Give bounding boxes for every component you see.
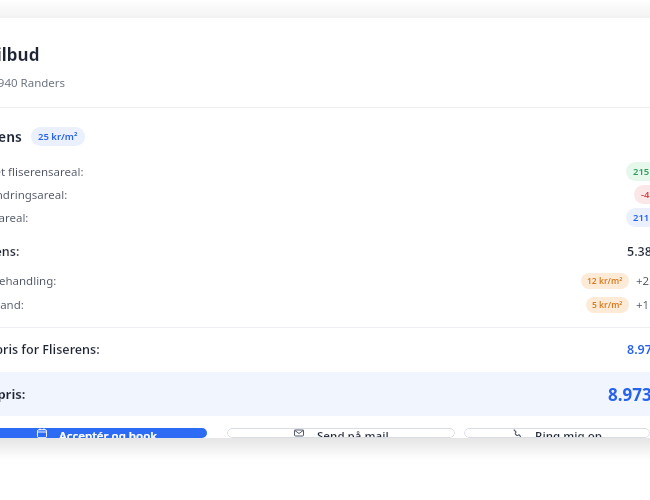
staticText: 12 kr/m² xyxy=(587,275,623,287)
staticText: 8.973 DKK xyxy=(608,383,650,406)
staticText: 5.385 DKK xyxy=(627,243,650,260)
staticText: Fliserens xyxy=(0,128,22,146)
other: Calendar xyxy=(37,428,50,438)
other: Phone xyxy=(512,428,525,438)
staticText: Acceptér og book xyxy=(59,428,158,438)
staticText: Total pris: xyxy=(0,385,26,403)
button[interactable]: Calendar xyxy=(0,428,207,438)
staticText: Total pris for Fliserens: xyxy=(0,341,100,358)
staticText: 8.972 DKK xyxy=(627,341,650,358)
staticText: Dit tilbud xyxy=(0,43,40,66)
button[interactable]: Phone xyxy=(464,428,650,438)
staticText: Algebehandling: xyxy=(0,273,57,289)
staticText: Fliserens: xyxy=(0,243,20,260)
staticText: 215 m² xyxy=(633,165,650,178)
staticText: +2.532 DKK xyxy=(636,273,650,289)
staticText: Ring mig op xyxy=(535,428,602,438)
staticText: -4 m² xyxy=(641,188,650,201)
staticText: 211 m² xyxy=(633,211,650,224)
staticText: Byvej 7, 8940 Randers xyxy=(0,75,66,91)
button[interactable]: Mail xyxy=(227,428,455,438)
other: Mail xyxy=(294,428,307,438)
staticText: Forhindringsareal: xyxy=(0,187,68,203)
staticText: Send på mail xyxy=(317,428,389,438)
staticText: Samlet fliserensareal: xyxy=(0,164,84,180)
staticText: Fugesand: xyxy=(0,297,24,313)
staticText: +1.055 DKK xyxy=(636,297,650,313)
staticText: 5 kr/m² xyxy=(592,299,623,311)
staticText: 25 kr/m² xyxy=(38,130,78,143)
staticText: Nettoareal: xyxy=(0,210,29,226)
